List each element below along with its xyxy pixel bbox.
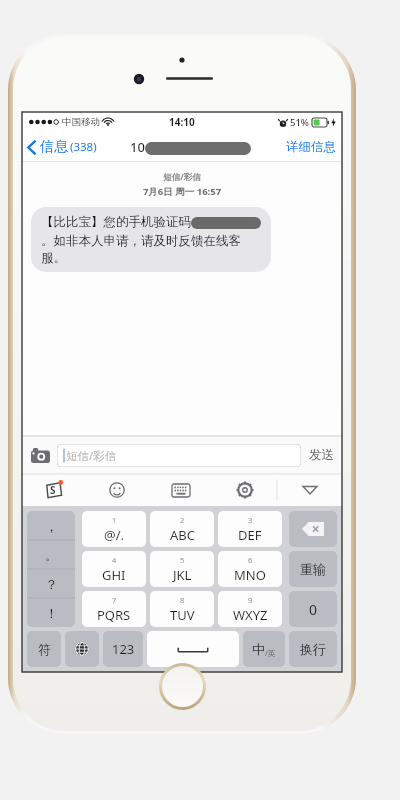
- button[interactable]: 中: [243, 631, 285, 667]
- staticText: ，: [45, 518, 58, 534]
- button[interactable]: 1: [82, 511, 146, 547]
- staticText: JKL: [173, 566, 192, 584]
- staticText: 符: [38, 641, 51, 657]
- staticText: 详细信息: [286, 139, 336, 155]
- staticText: ！: [45, 605, 58, 621]
- button[interactable]: Space: [147, 631, 239, 667]
- button[interactable]: 重输: [289, 551, 337, 587]
- staticText: 短信/彩信: [22, 171, 342, 183]
- staticText: MNO: [234, 566, 266, 584]
- button[interactable]: Sogou input: [22, 474, 85, 506]
- button[interactable]: 5: [150, 551, 214, 587]
- button[interactable]: 短信/彩信: [57, 444, 301, 467]
- button[interactable]: Hide keyboard: [278, 474, 342, 506]
- staticText: 换行: [300, 641, 326, 657]
- button[interactable]: 0: [289, 591, 337, 627]
- staticText: 0: [309, 600, 318, 619]
- button[interactable]: Delete: [289, 511, 337, 547]
- button[interactable]: Language: [65, 631, 99, 667]
- button[interactable]: 8: [150, 591, 214, 627]
- staticText: 6: [248, 555, 253, 565]
- button[interactable]: 【比比宝】您的手机验证码: [31, 207, 271, 272]
- staticText: /英: [265, 648, 276, 658]
- staticText: 7: [112, 595, 117, 605]
- button[interactable]: 3: [218, 511, 282, 547]
- button[interactable]: 。: [27, 541, 75, 569]
- staticText: 10: [130, 138, 145, 156]
- button[interactable]: ，: [27, 511, 75, 540]
- staticText: @/.: [104, 526, 125, 544]
- staticText: ABC: [170, 526, 195, 544]
- staticText: 信息: [40, 138, 68, 156]
- staticText: (338): [70, 139, 97, 155]
- staticText: 。如非本人申请，请及时反馈在线客服。: [41, 233, 261, 265]
- staticText: 14:10: [169, 115, 195, 129]
- staticText: 。: [45, 547, 58, 563]
- staticText: 中: [252, 641, 265, 657]
- button[interactable]: 123: [103, 631, 143, 667]
- staticText: PQRS: [97, 606, 131, 624]
- staticText: GHI: [102, 566, 126, 584]
- button[interactable]: ！: [27, 599, 75, 627]
- button[interactable]: 9: [218, 591, 282, 627]
- staticText: 3: [248, 515, 253, 525]
- button[interactable]: Keyboard layout: [149, 474, 213, 506]
- staticText: 7月6日 周一 16:57: [22, 185, 342, 198]
- button[interactable]: 6: [218, 551, 282, 587]
- button[interactable]: 符: [27, 631, 61, 667]
- button[interactable]: Emoji: [85, 474, 149, 506]
- staticText: ？: [45, 576, 58, 592]
- staticText: DEF: [238, 526, 262, 544]
- button[interactable]: ？: [27, 570, 75, 598]
- button[interactable]: Settings: [213, 474, 277, 506]
- button[interactable]: 7: [82, 591, 146, 627]
- staticText: 中国移动: [62, 116, 100, 128]
- staticText: 123: [112, 640, 135, 658]
- staticText: 4: [112, 555, 117, 565]
- staticText: 51%: [290, 116, 309, 129]
- staticText: 1: [112, 515, 117, 525]
- staticText: TUV: [170, 606, 195, 624]
- staticText: 9: [248, 595, 253, 605]
- button[interactable]: 详细信息: [286, 139, 336, 155]
- staticText: 发送: [309, 447, 334, 463]
- button[interactable]: 2: [150, 511, 214, 547]
- staticText: WXYZ: [233, 606, 268, 624]
- button[interactable]: 信息: [26, 138, 97, 156]
- button[interactable]: Camera: [28, 444, 52, 466]
- staticText: 5: [180, 555, 185, 565]
- button[interactable]: 发送: [307, 447, 336, 463]
- staticText: 【比比宝】您的手机验证码: [41, 214, 191, 230]
- staticText: 短信/彩信: [66, 448, 117, 464]
- staticText: 重输: [300, 561, 326, 577]
- staticText: 2: [180, 515, 185, 525]
- button[interactable]: 换行: [289, 631, 337, 667]
- button[interactable]: 4: [82, 551, 146, 587]
- staticText: 8: [180, 595, 185, 605]
- staticText: S: [50, 483, 56, 497]
- button[interactable]: Home: [159, 663, 206, 710]
